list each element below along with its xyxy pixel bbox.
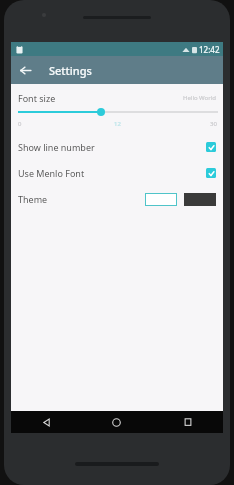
- staticText: Settings: [49, 63, 92, 78]
- button[interactable]: Light theme: [145, 193, 177, 206]
- staticText: 0: [18, 120, 22, 128]
- button[interactable]: Recent apps: [152, 411, 223, 433]
- staticText: 30: [210, 120, 217, 128]
- button[interactable]: Show line number: [11, 139, 223, 155]
- button[interactable]: Use Menlo Font: [11, 165, 223, 181]
- button[interactable]: Font size slider: [11, 104, 223, 120]
- staticText: 12: [114, 120, 121, 128]
- button[interactable]: Navigate up: [11, 56, 39, 84]
- staticText: Theme: [18, 193, 48, 205]
- staticText: Use Menlo Font: [18, 167, 85, 179]
- staticText: Font size: [18, 92, 56, 104]
- staticText: 12:42: [199, 44, 220, 55]
- button[interactable]: Home: [81, 411, 152, 433]
- staticText: Hello World: [183, 94, 216, 102]
- staticText: Show line number: [18, 141, 95, 153]
- button[interactable]: Back: [11, 411, 81, 433]
